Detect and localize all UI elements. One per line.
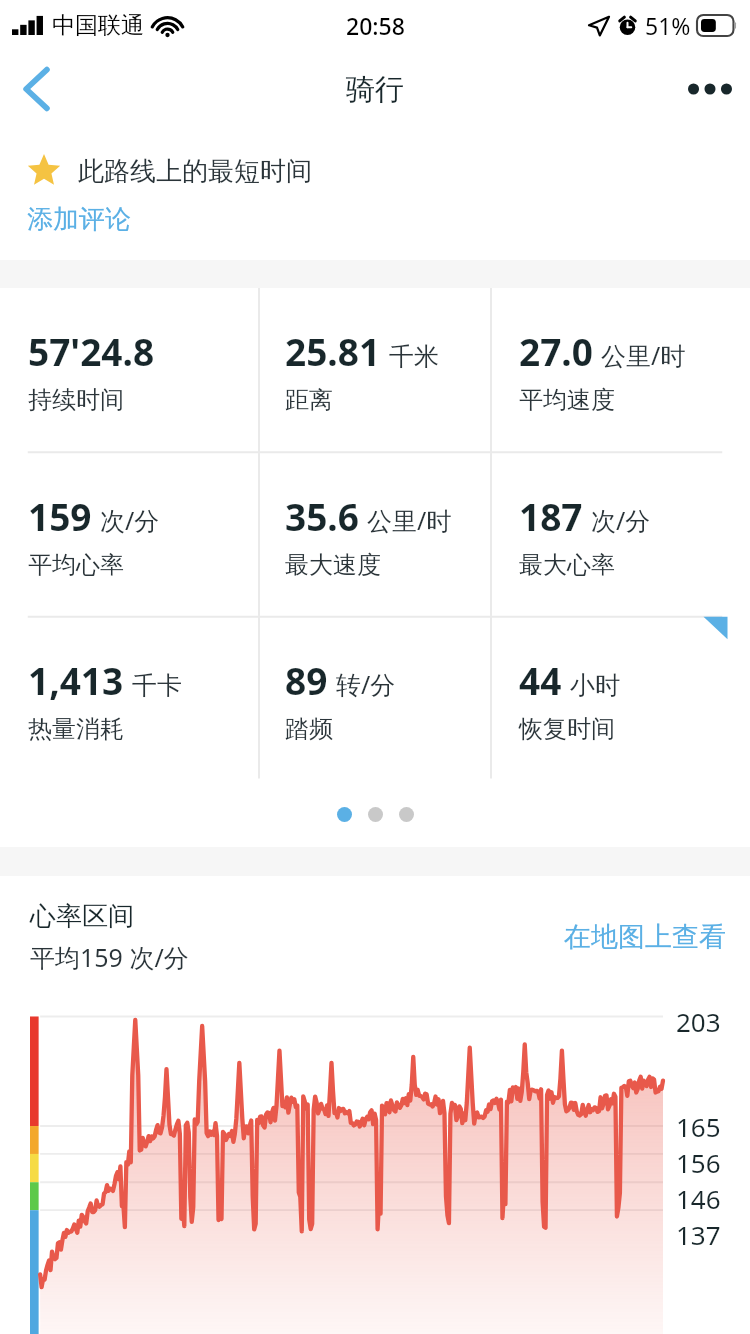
staticText: 次/分 bbox=[100, 503, 160, 537]
button[interactable]: Page 2 bbox=[368, 807, 383, 822]
staticText: 159 bbox=[28, 491, 92, 541]
staticText: 20:58 bbox=[346, 10, 405, 41]
staticText: 骑行 bbox=[346, 71, 404, 108]
button[interactable]: Page 3 bbox=[399, 807, 414, 822]
staticText: 165 bbox=[676, 1109, 721, 1144]
button[interactable]: 159 bbox=[0, 453, 259, 617]
button[interactable]: 44 bbox=[491, 617, 750, 781]
button[interactable]: 89 bbox=[259, 617, 491, 781]
staticText: 此路线上的最短时间 bbox=[78, 155, 312, 188]
staticText: 中国联通 bbox=[52, 11, 144, 40]
staticText: 25.81 bbox=[285, 326, 381, 376]
staticText: 持续时间 bbox=[28, 385, 124, 415]
staticText: 心率区间 bbox=[30, 900, 134, 933]
staticText: 27.0 bbox=[519, 326, 593, 376]
staticText: 35.6 bbox=[285, 491, 359, 541]
staticText: 热量消耗 bbox=[28, 714, 124, 744]
staticText: 187 bbox=[519, 491, 583, 541]
staticText: 146 bbox=[676, 1181, 721, 1216]
staticText: 添加评论 bbox=[27, 203, 131, 236]
staticText: 千米 bbox=[389, 341, 439, 372]
button[interactable]: 在地图上查看 bbox=[564, 920, 726, 954]
button[interactable]: 添加评论 bbox=[27, 203, 131, 236]
staticText: 最大速度 bbox=[285, 550, 381, 580]
button[interactable]: 57'24.8 bbox=[0, 288, 259, 453]
button[interactable]: Back bbox=[0, 50, 72, 128]
staticText: 平均159 次/分 bbox=[30, 940, 189, 974]
button[interactable]: 187 bbox=[491, 453, 750, 617]
staticText: 距离 bbox=[285, 385, 333, 415]
staticText: 公里/时 bbox=[367, 503, 452, 537]
staticText: 次/分 bbox=[591, 503, 651, 537]
staticText: 1,413 bbox=[28, 655, 124, 705]
staticText: 平均心率 bbox=[28, 550, 124, 580]
staticText: 51% bbox=[645, 10, 691, 41]
staticText: 137 bbox=[676, 1217, 721, 1252]
button[interactable]: 27.0 bbox=[491, 288, 750, 453]
staticText: 156 bbox=[676, 1145, 721, 1180]
staticText: 恢复时间 bbox=[519, 714, 615, 744]
staticText: 公里/时 bbox=[601, 338, 686, 372]
staticText: 89 bbox=[285, 655, 328, 705]
button[interactable]: 1,413 bbox=[0, 617, 259, 781]
staticText: 平均速度 bbox=[519, 385, 615, 415]
staticText: 小时 bbox=[570, 670, 620, 701]
staticText: 44 bbox=[519, 655, 562, 705]
button[interactable]: 35.6 bbox=[259, 453, 491, 617]
staticText: 千卡 bbox=[132, 670, 182, 701]
staticText: 57'24.8 bbox=[28, 326, 155, 376]
button[interactable]: 25.81 bbox=[259, 288, 491, 453]
staticText: 在地图上查看 bbox=[564, 920, 726, 954]
staticText: 最大心率 bbox=[519, 550, 615, 580]
staticText: 踏频 bbox=[285, 714, 333, 744]
staticText: 转/分 bbox=[336, 667, 396, 701]
button[interactable]: More options bbox=[670, 50, 750, 128]
button[interactable]: Page 1 bbox=[337, 807, 352, 822]
staticText: 203 bbox=[676, 1004, 721, 1039]
